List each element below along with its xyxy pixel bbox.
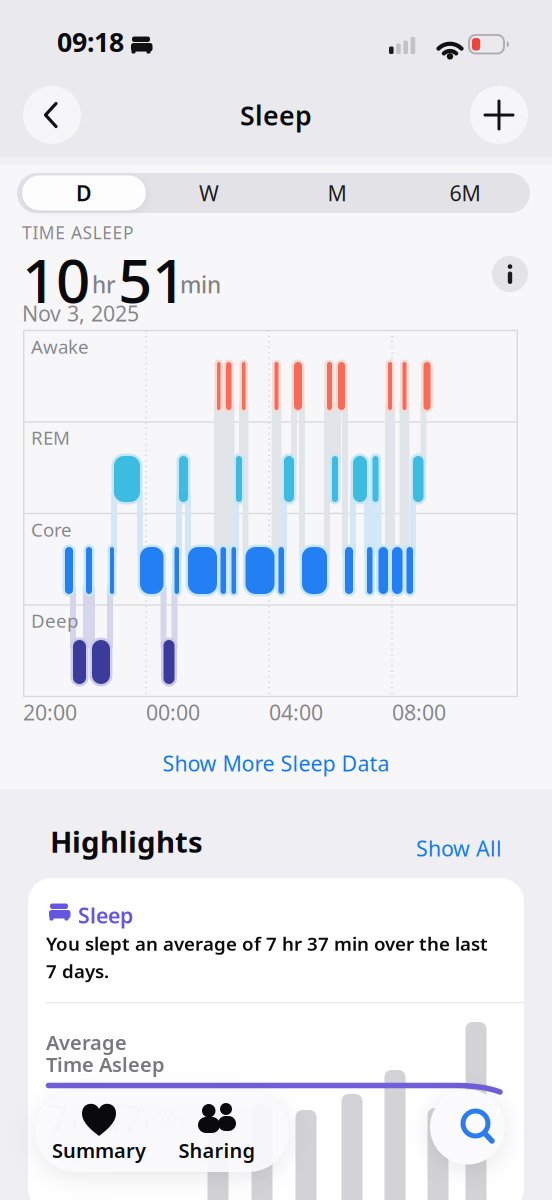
staticText: Deep: [31, 608, 78, 633]
staticText: Nov 3, 2025: [22, 299, 139, 327]
button[interactable]: More information: [492, 256, 528, 292]
staticText: Time Asleep: [46, 1051, 165, 1078]
staticText: Summary: [52, 1137, 146, 1164]
staticText: hr: [72, 1104, 96, 1134]
staticText: Sharing: [178, 1137, 255, 1164]
staticText: 00:00: [146, 698, 200, 726]
staticText: TIME ASLEEP: [22, 221, 133, 244]
staticText: Highlights: [50, 822, 203, 861]
staticText: hr: [92, 269, 116, 300]
staticText: 20:00: [23, 698, 77, 726]
button[interactable]: W: [145, 173, 273, 213]
staticText: Sleep: [78, 901, 133, 929]
staticText: Sleep: [240, 97, 312, 133]
button[interactable]: Sharing: [162, 1091, 272, 1172]
staticText: You slept an average of 7 hr 37 min over…: [46, 931, 488, 956]
staticText: Awake: [31, 334, 89, 359]
staticText: 09:18: [57, 24, 124, 59]
button[interactable]: Show All: [302, 834, 502, 862]
staticText: 04:00: [269, 698, 323, 726]
button[interactable]: Back: [23, 86, 81, 144]
button[interactable]: 6M: [401, 173, 529, 213]
button[interactable]: Sleep: [28, 878, 524, 1200]
staticText: W: [199, 179, 219, 207]
button[interactable]: Summary: [34, 1091, 164, 1172]
staticText: 7 days.: [46, 958, 109, 983]
staticText: 10: [22, 240, 90, 320]
staticText: 7: [46, 1092, 69, 1145]
button[interactable]: Add Data: [470, 86, 528, 144]
staticText: 08:00: [392, 698, 446, 726]
button[interactable]: M: [273, 173, 401, 213]
staticText: 37: [98, 1092, 144, 1145]
staticText: 6M: [449, 179, 480, 207]
button[interactable]: Search: [430, 1089, 505, 1164]
button[interactable]: D: [22, 175, 146, 210]
staticText: REM: [31, 425, 70, 450]
staticText: min: [180, 269, 221, 300]
staticText: D: [76, 179, 92, 207]
staticText: M: [327, 179, 346, 207]
staticText: Average: [46, 1029, 127, 1056]
staticText: Show More Sleep Data: [162, 749, 389, 777]
button[interactable]: Show More Sleep Data: [0, 749, 552, 777]
staticText: Show All: [416, 834, 502, 862]
staticText: Core: [31, 517, 72, 542]
staticText: 51: [118, 240, 186, 320]
